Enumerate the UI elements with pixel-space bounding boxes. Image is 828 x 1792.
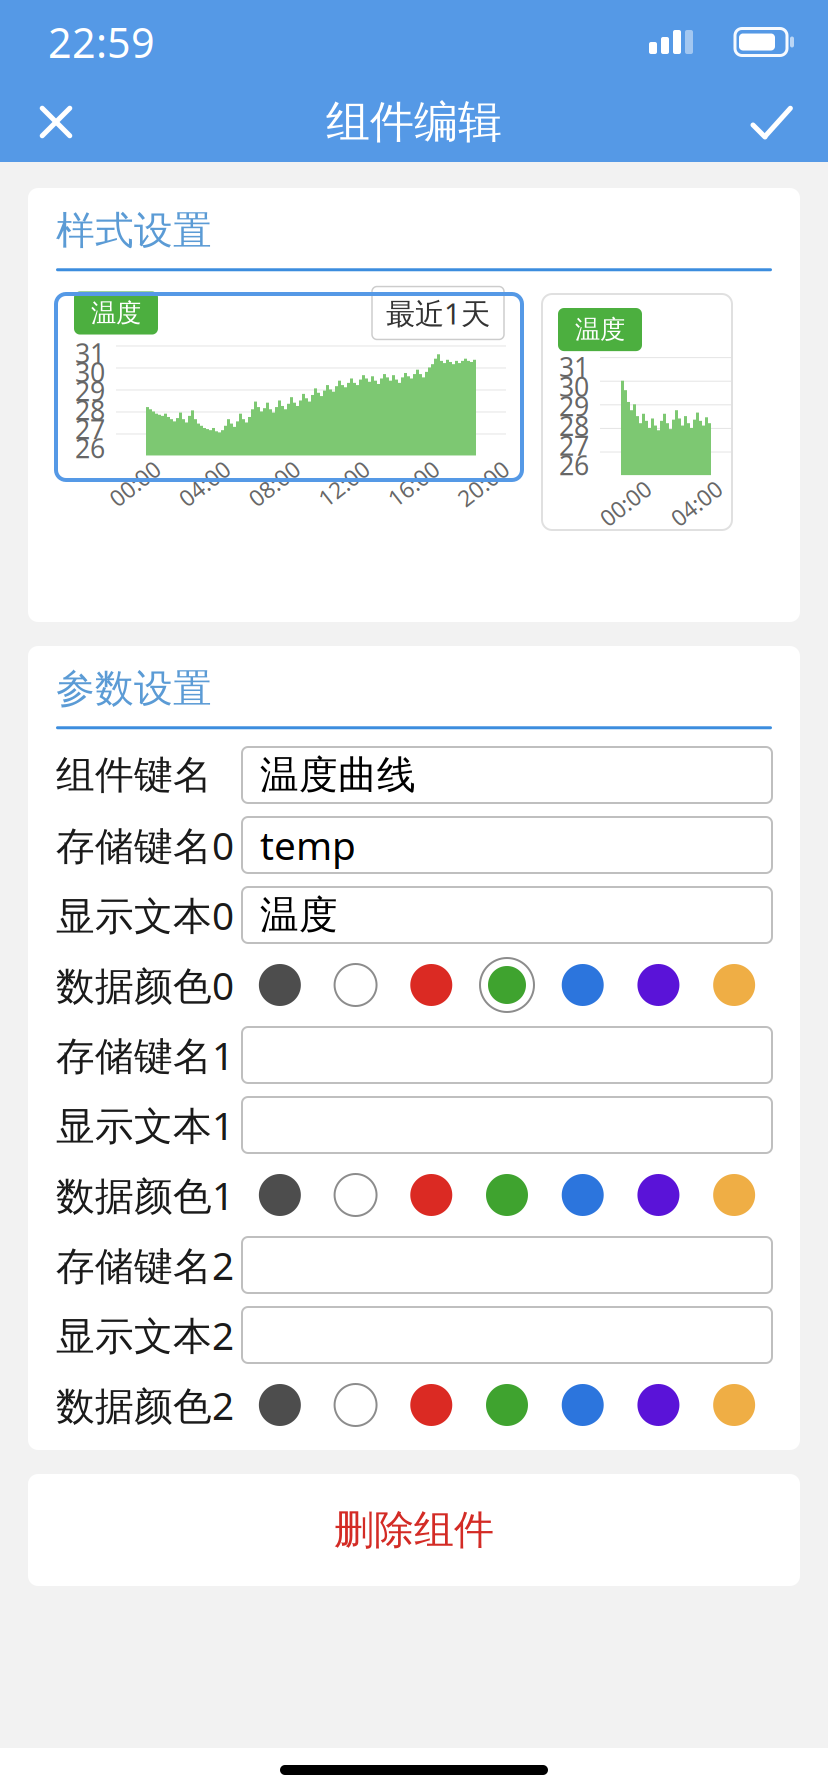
staticText: 温度: [91, 297, 141, 328]
staticText: 26: [559, 447, 589, 483]
button[interactable]: Color option: [554, 1376, 612, 1434]
button[interactable]: Color option: [554, 1166, 612, 1224]
staticText: 数据颜色2: [56, 1379, 234, 1431]
staticText: 删除组件: [334, 1505, 494, 1554]
staticText: 组件编辑: [326, 95, 502, 149]
button[interactable]: Color option: [629, 1166, 687, 1224]
staticText: 29: [75, 373, 105, 409]
staticText: 20:00: [454, 468, 512, 498]
button[interactable]: Color option: [402, 1376, 460, 1434]
button[interactable]: Color option: [402, 1166, 460, 1224]
staticText: 22:59: [48, 15, 155, 69]
button[interactable]: Color option: [251, 956, 309, 1014]
button[interactable]: Color option: [327, 1166, 385, 1224]
staticText: 04:00: [175, 468, 233, 498]
button[interactable]: 删除组件: [28, 1474, 800, 1586]
staticText: 显示文本0: [56, 889, 234, 941]
button[interactable]: Color option: [705, 1376, 763, 1434]
staticText: 00:00: [596, 488, 654, 518]
staticText: 温度: [260, 891, 338, 939]
button[interactable]: Color option: [478, 1376, 536, 1434]
button[interactable]: Color option: [327, 1376, 385, 1434]
staticText: 27: [75, 411, 105, 447]
staticText: 00:00: [106, 468, 164, 498]
staticText: 12:00: [315, 468, 373, 498]
staticText: 29: [559, 388, 589, 424]
staticText: 组件键名: [56, 751, 212, 799]
staticText: 27: [559, 428, 589, 463]
button[interactable]: Color option: [251, 1376, 309, 1434]
staticText: 31: [559, 349, 589, 384]
button[interactable]: Confirm: [734, 84, 810, 160]
staticText: 30: [559, 369, 589, 404]
staticText: 最近1天: [386, 293, 490, 332]
staticText: 温度曲线: [260, 751, 416, 799]
button[interactable]: Color option: [327, 956, 385, 1014]
staticText: 温度: [575, 314, 625, 345]
button[interactable]: Color option: [478, 1166, 536, 1224]
staticText: 08:00: [245, 468, 303, 498]
staticText: temp: [260, 819, 356, 871]
staticText: 存储键名0: [56, 819, 234, 871]
button[interactable]: Color option: [251, 1166, 309, 1224]
staticText: 存储键名1: [56, 1029, 234, 1081]
staticText: 数据颜色1: [56, 1169, 234, 1221]
button[interactable]: Color option: [705, 1166, 763, 1224]
staticText: 样式设置: [56, 207, 212, 254]
button[interactable]: Close: [18, 84, 94, 160]
button[interactable]: Color option: [554, 956, 612, 1014]
button[interactable]: Color option: [629, 1376, 687, 1434]
button[interactable]: Color option: [705, 956, 763, 1014]
button[interactable]: Color option: [402, 956, 460, 1014]
staticText: 26: [75, 430, 105, 466]
staticText: 04:00: [667, 488, 725, 518]
staticText: 28: [75, 392, 105, 428]
button[interactable]: Color option: [629, 956, 687, 1014]
staticText: 16:00: [384, 468, 442, 498]
staticText: 存储键名2: [56, 1239, 234, 1291]
staticText: 显示文本1: [56, 1099, 234, 1151]
button[interactable]: Color option: [478, 956, 536, 1014]
staticText: 31: [75, 335, 105, 371]
staticText: 参数设置: [56, 665, 212, 712]
staticText: 30: [75, 354, 105, 390]
staticText: 28: [559, 408, 589, 443]
staticText: 数据颜色0: [56, 959, 234, 1011]
staticText: 显示文本2: [56, 1309, 234, 1361]
